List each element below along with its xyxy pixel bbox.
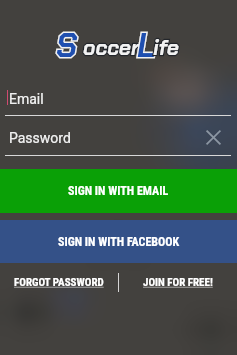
staticText: JOIN FOR FREE! (143, 276, 213, 289)
staticText: FORGOT PASSWORD (14, 276, 104, 289)
button[interactable]: SIGN IN WITH EMAIL (0, 169, 237, 213)
button[interactable]: Clear password (205, 129, 222, 146)
staticText: Email (9, 91, 44, 107)
button[interactable]: SIGN IN WITH FACEBOOK (0, 220, 237, 263)
button[interactable]: FORGOT PASSWORD (0, 270, 118, 294)
button[interactable]: JOIN FOR FREE! (119, 270, 237, 294)
staticText: SIGN IN WITH EMAIL (68, 184, 169, 198)
staticText: Password (9, 130, 71, 146)
staticText: SIGN IN WITH FACEBOOK (58, 235, 180, 249)
